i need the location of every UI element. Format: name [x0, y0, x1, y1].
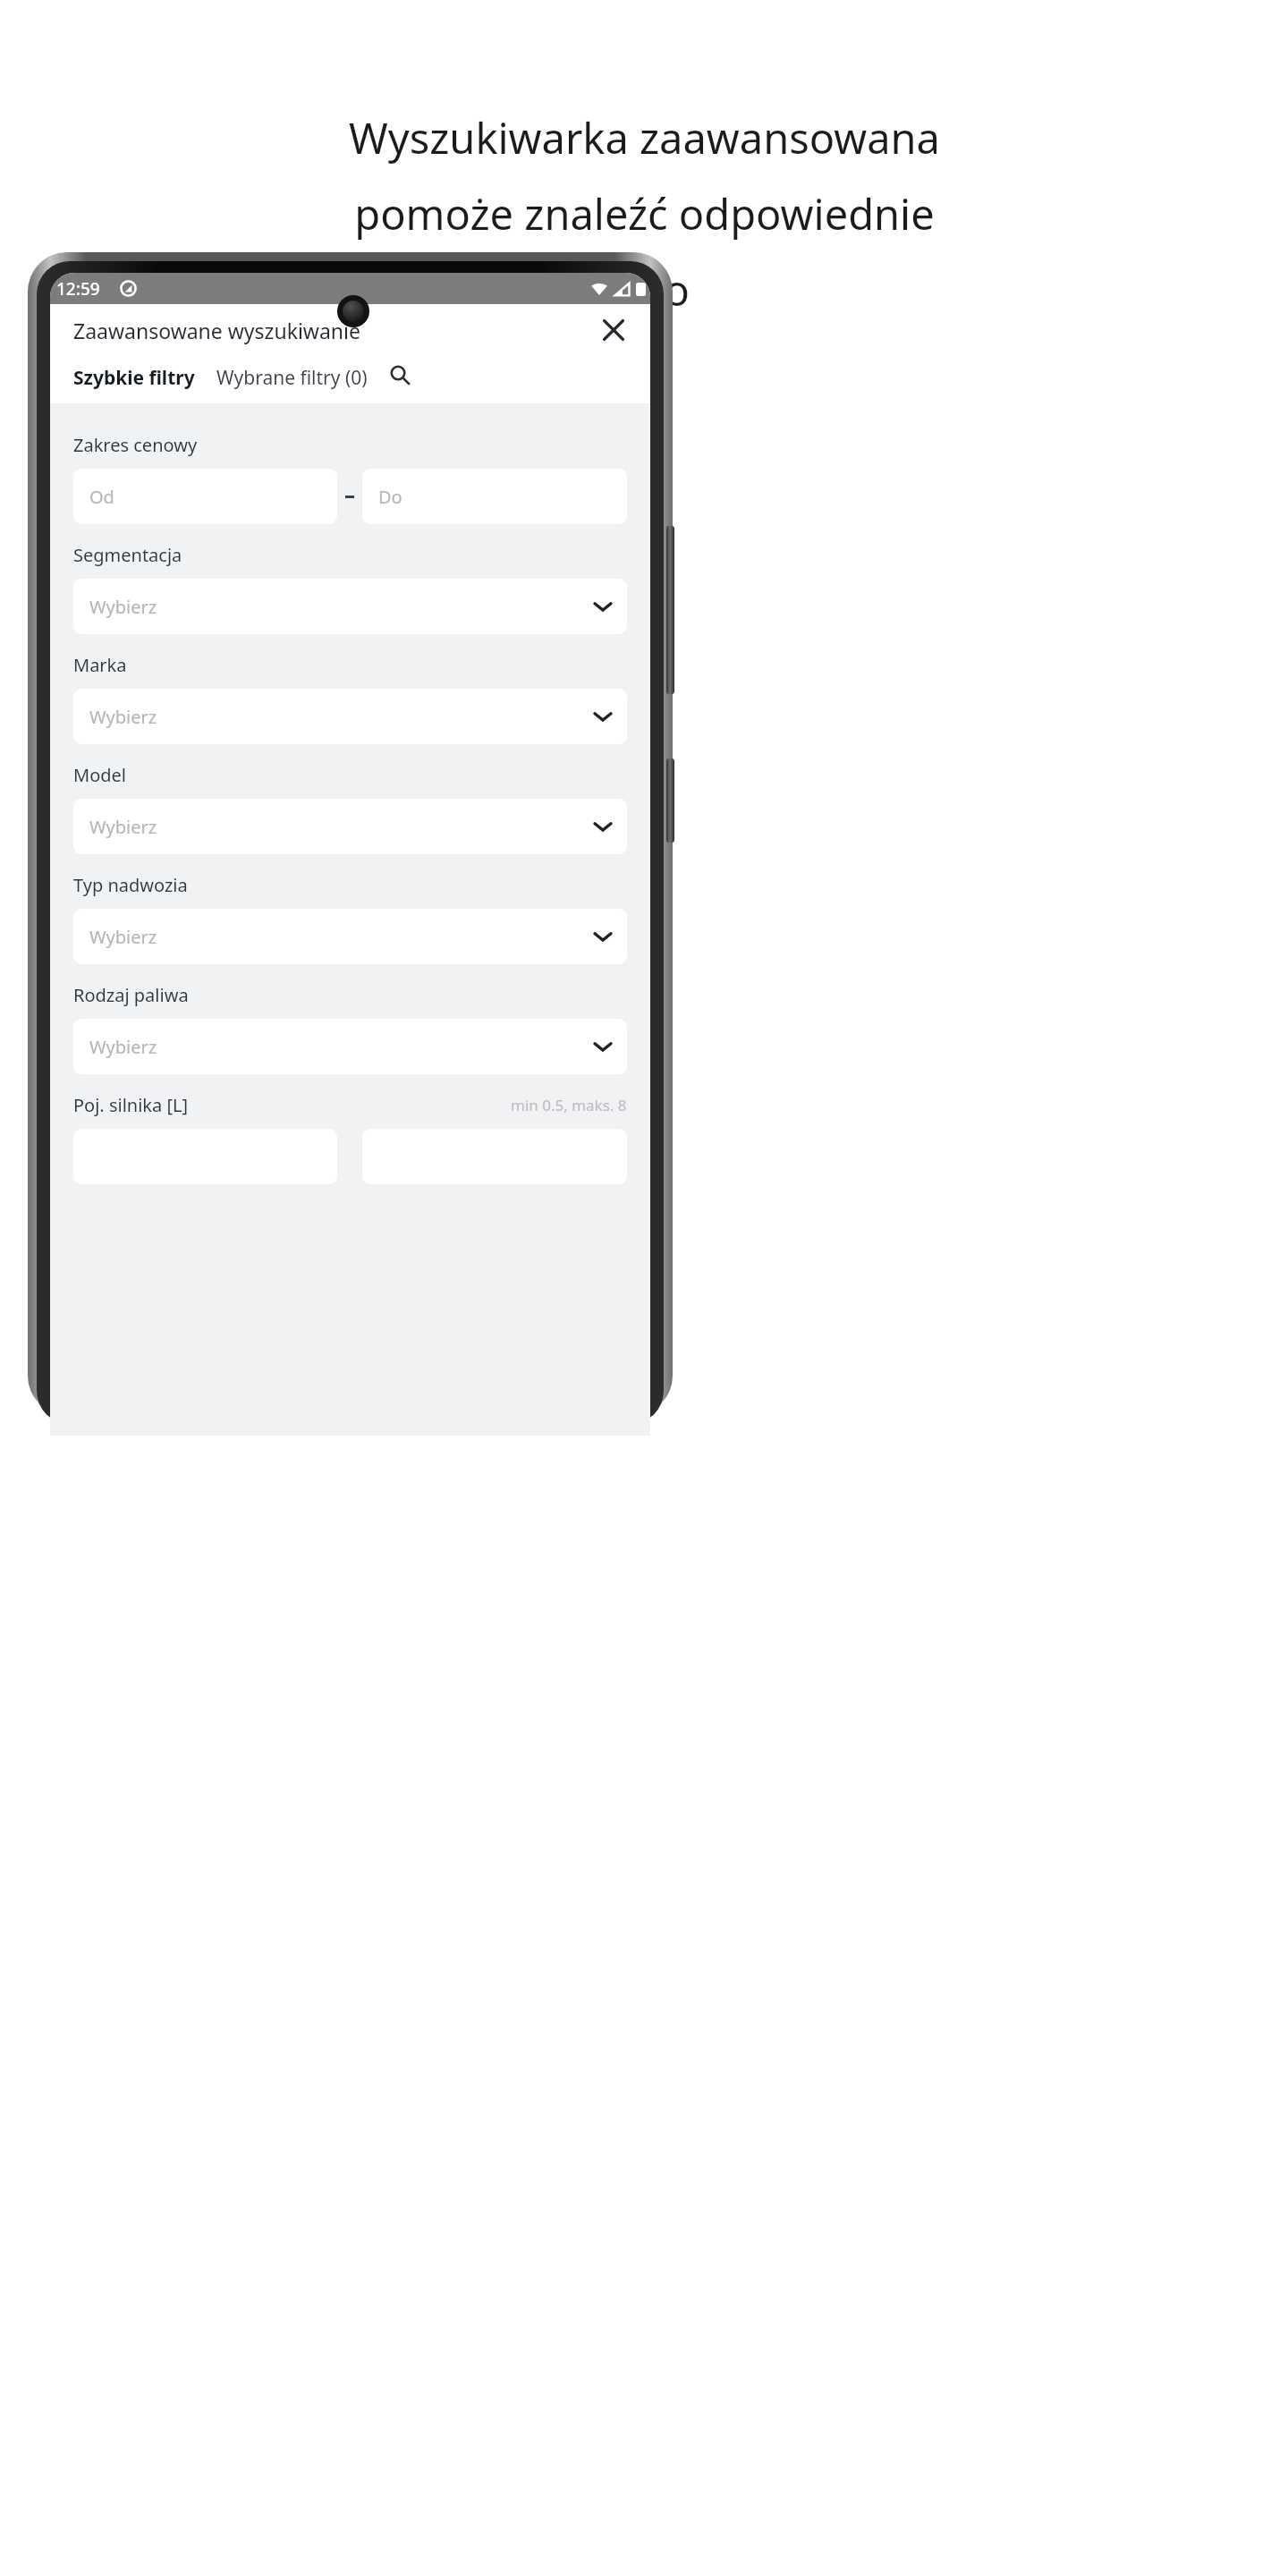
staticText: Rodzaj paliwa — [73, 983, 189, 1007]
staticText: 12:59 — [56, 277, 100, 301]
button[interactable]: Od — [73, 469, 337, 524]
staticText: Zaawansowane wyszukiwanie — [73, 317, 360, 344]
button[interactable]: Wybierz — [73, 909, 627, 964]
staticText: Wybierz — [89, 815, 157, 839]
staticText: Wybierz — [89, 595, 157, 619]
staticText: Typ nadwozia — [73, 873, 188, 897]
staticText: min 0.5, maks. 8 — [511, 1095, 627, 1115]
staticText: Wybierz — [89, 705, 157, 729]
staticText: Segmentacja — [73, 543, 182, 567]
staticText: Wybierz — [89, 925, 157, 949]
button[interactable]: Wybierz — [73, 799, 627, 854]
button[interactable]: Szybkie filtry — [73, 356, 195, 403]
button[interactable]: Wybierz — [73, 689, 627, 744]
button[interactable]: Wybierz — [73, 1019, 627, 1074]
button[interactable]: Zamknij — [593, 309, 634, 351]
staticText: pomoże znaleźć odpowiednie — [354, 185, 935, 242]
button[interactable]: Szukaj — [384, 359, 416, 391]
button[interactable]: Do — [362, 469, 627, 524]
staticText: Od — [89, 485, 114, 509]
staticText: Zakres cenowy — [73, 433, 198, 457]
staticText: Marka — [73, 653, 127, 677]
staticText: Do — [378, 485, 402, 509]
staticText: Poj. silnika [L] — [73, 1093, 189, 1117]
staticText: Szybkie filtry — [73, 365, 195, 391]
staticText: Wyszukiwarka zaawansowana — [349, 109, 940, 166]
button[interactable]: Wybierz — [73, 579, 627, 634]
button[interactable]: Wybrane filtry (0) — [216, 365, 368, 391]
staticText: Model — [73, 763, 126, 787]
staticText: auto — [599, 261, 690, 318]
staticText: Wybierz — [89, 1035, 157, 1059]
